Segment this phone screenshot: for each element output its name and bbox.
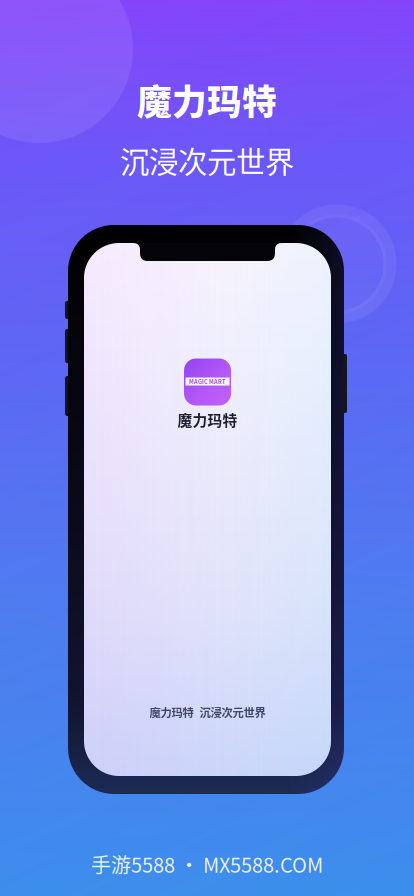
staticText: 魔力玛特 沉浸次元世界 xyxy=(149,704,265,720)
staticText: 手游5588 · MX5588.COM xyxy=(91,849,323,878)
staticText: MAGIC MART xyxy=(189,377,226,385)
staticText: 魔力玛特 xyxy=(177,409,237,430)
staticText: 魔力玛特 xyxy=(137,75,277,125)
staticText: 沉浸次元世界 xyxy=(120,139,294,181)
button[interactable]: MAGIC MART xyxy=(171,358,243,428)
button[interactable]: 手游5588 · MX5588.COM xyxy=(0,851,414,877)
